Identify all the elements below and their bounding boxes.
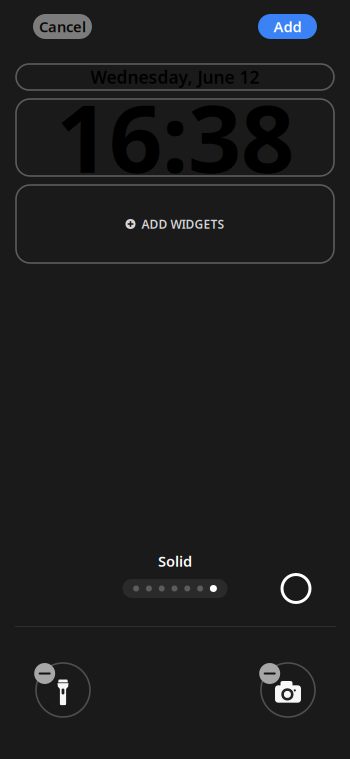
- button[interactable]: Add: [258, 14, 317, 39]
- staticText: Wednesday, June 12: [90, 65, 259, 88]
- button[interactable]: Colour: [282, 574, 310, 602]
- button[interactable]: Flashlight: [24, 655, 102, 725]
- staticText: Add: [273, 17, 301, 36]
- staticText: 16:38: [56, 74, 294, 198]
- button[interactable]: ADD WIDGETS: [16, 185, 334, 263]
- staticText: Solid: [158, 551, 192, 571]
- staticText: ADD WIDGETS: [141, 216, 224, 232]
- button[interactable]: Cancel: [33, 14, 92, 39]
- button[interactable]: Camera: [249, 655, 327, 725]
- staticText: Cancel: [39, 17, 86, 36]
